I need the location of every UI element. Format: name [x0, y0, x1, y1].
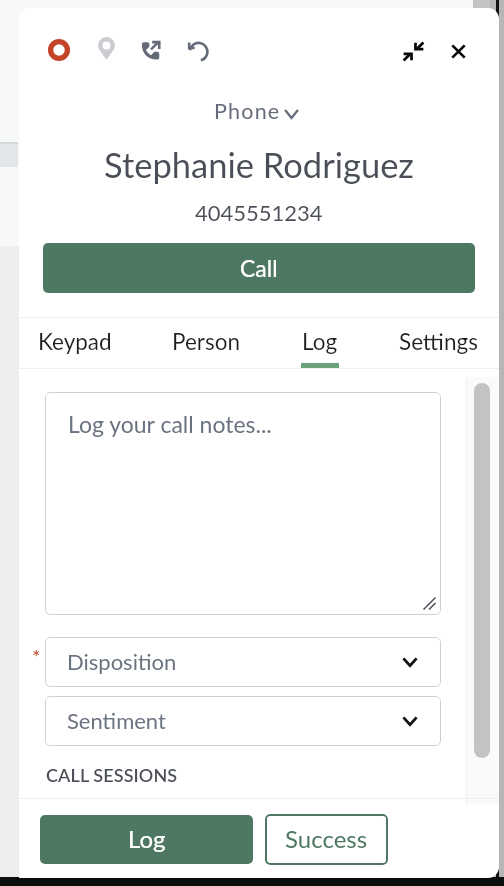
button[interactable]: Minimize	[391, 29, 435, 73]
button[interactable]: Settings	[399, 310, 478, 368]
staticText: Log your call notes...	[68, 410, 272, 438]
staticText: Person	[172, 328, 240, 355]
button[interactable]: Log	[40, 815, 253, 864]
staticText: Log	[302, 328, 338, 355]
staticText: Phone	[214, 98, 281, 124]
staticText: *	[32, 644, 41, 668]
button[interactable]: Outgoing call	[129, 28, 173, 72]
button[interactable]: Log your call notes...	[45, 392, 441, 615]
button[interactable]: Undo	[174, 28, 218, 72]
staticText: Disposition	[67, 648, 177, 674]
staticText: Settings	[399, 328, 478, 355]
button[interactable]: Disposition	[45, 637, 441, 687]
button[interactable]: Close	[436, 29, 480, 73]
staticText: 4045551234	[195, 199, 323, 225]
button[interactable]: Record	[37, 28, 81, 72]
button[interactable]: Phone	[208, 95, 305, 127]
button[interactable]: Location	[84, 26, 128, 70]
staticText: Stephanie Rodriguez	[104, 144, 414, 185]
staticText: Call	[240, 254, 278, 282]
staticText: Log	[128, 824, 166, 853]
button[interactable]: Log	[301, 310, 339, 368]
staticText: Success	[285, 824, 368, 853]
button[interactable]: Person	[172, 310, 240, 368]
button[interactable]: Call	[43, 243, 475, 293]
button[interactable]: Keypad	[38, 310, 112, 368]
button[interactable]: Success	[265, 814, 388, 865]
staticText: CALL SESSIONS	[46, 764, 178, 786]
button[interactable]: Sentiment	[45, 696, 441, 746]
staticText: Keypad	[38, 328, 112, 355]
staticText: Sentiment	[67, 707, 166, 733]
